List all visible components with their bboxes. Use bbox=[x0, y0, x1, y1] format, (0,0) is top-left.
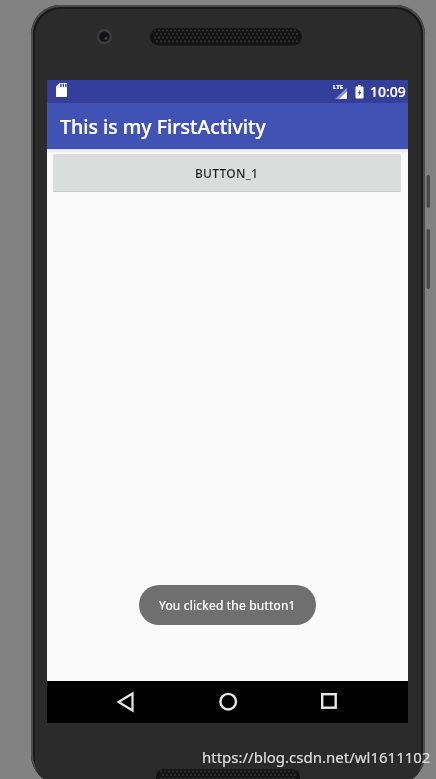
button[interactable] bbox=[105, 681, 147, 723]
staticText: LTE bbox=[333, 83, 344, 91]
button[interactable]: BUTTON_1 bbox=[53, 154, 401, 191]
button[interactable] bbox=[207, 681, 249, 723]
staticText: https://blog.csdn.net/wl1611102 bbox=[202, 747, 431, 767]
staticText: BUTTON_1 bbox=[195, 165, 259, 181]
staticText: 10:09 bbox=[370, 82, 406, 101]
staticText: This is my FirstActivity bbox=[60, 113, 266, 140]
button[interactable] bbox=[308, 681, 350, 723]
staticText: You clicked the button1 bbox=[159, 597, 296, 613]
